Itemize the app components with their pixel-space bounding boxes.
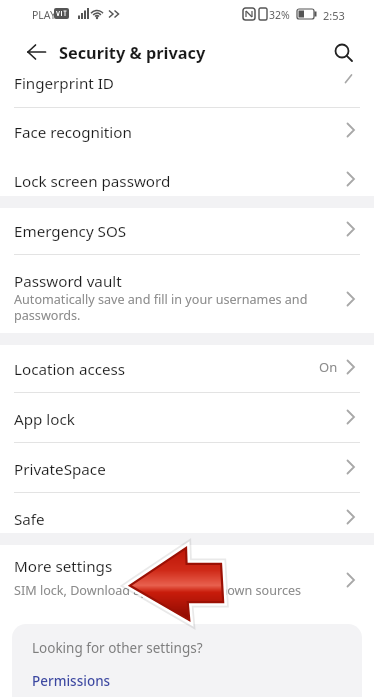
staticText: Safe <box>14 509 45 530</box>
staticText: Password vault <box>14 271 122 292</box>
staticText: Security & privacy <box>59 42 206 64</box>
button[interactable]: Password vault <box>0 255 374 333</box>
staticText: App lock <box>14 409 75 430</box>
staticText: Automatically save and fill in your user… <box>14 291 330 324</box>
staticText: 2:53 <box>323 8 345 23</box>
button[interactable]: Lock screen password <box>0 154 374 204</box>
button[interactable]: More settings <box>0 545 374 615</box>
button[interactable] <box>333 42 355 64</box>
staticText: On <box>319 358 338 376</box>
button[interactable]: Location access <box>0 342 374 392</box>
staticText: Emergency SOS <box>14 221 127 242</box>
staticText: Fingerprint ID <box>14 73 114 94</box>
staticText: Lock screen password <box>14 171 171 192</box>
button[interactable]: Emergency SOS <box>0 204 374 254</box>
staticText: Looking for other settings? <box>32 639 203 657</box>
staticText: Permissions <box>32 672 111 690</box>
button[interactable]: Face recognition <box>0 105 374 155</box>
staticText: Location access <box>14 359 126 380</box>
staticText: PrivateSpace <box>14 459 106 480</box>
button[interactable]: PrivateSpace <box>0 442 374 492</box>
button[interactable]: Permissions <box>32 672 111 690</box>
button[interactable] <box>26 43 48 61</box>
staticText: More settings <box>14 556 113 577</box>
button[interactable]: App lock <box>0 392 374 442</box>
button[interactable]: Fingerprint ID <box>0 72 374 107</box>
staticText: 32% <box>269 8 290 22</box>
staticText: SIM lock, Download apps from unknown sou… <box>14 582 302 599</box>
staticText: Face recognition <box>14 122 132 143</box>
staticText: PLAY <box>32 8 56 22</box>
button[interactable]: Safe <box>0 492 374 542</box>
